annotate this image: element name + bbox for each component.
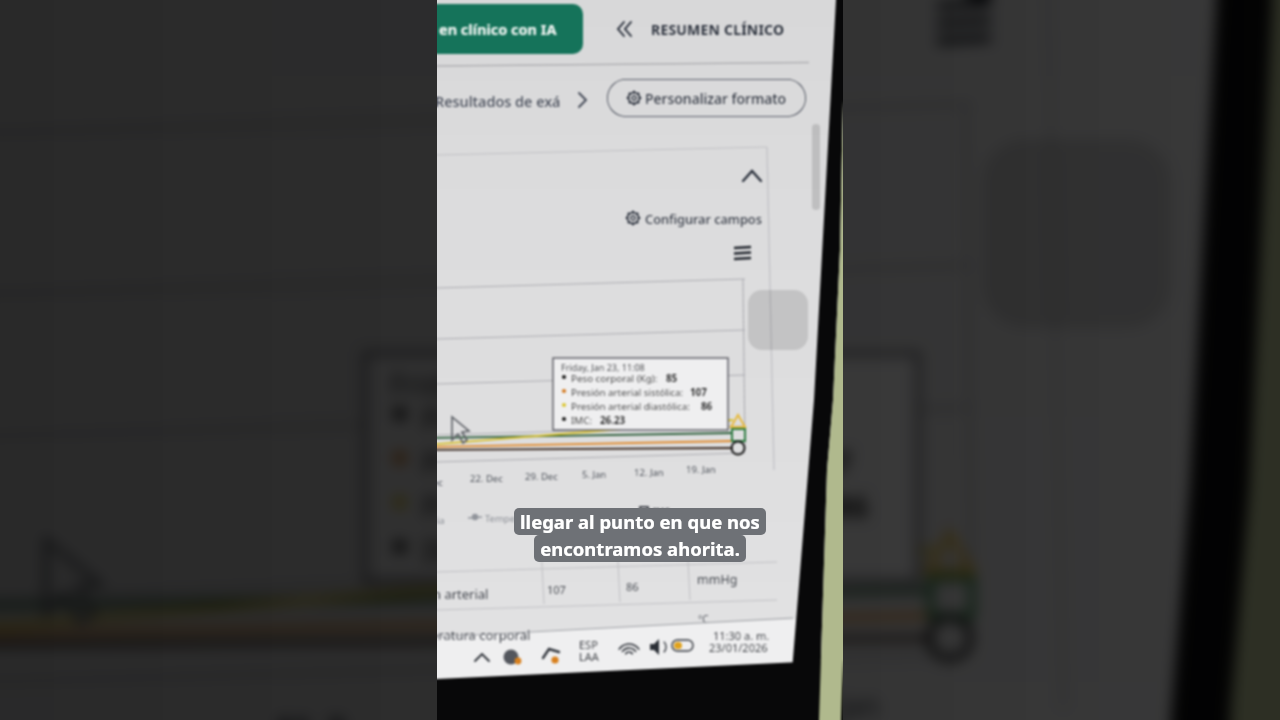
staticText: 19. Jan	[785, 685, 880, 720]
staticText: 26.23	[514, 531, 596, 572]
staticText: IMC	[653, 505, 670, 517]
staticText: Presión arterial sistólica:	[422, 442, 785, 483]
button[interactable]: Bandeja del sistema	[467, 634, 707, 668]
staticText: ec	[437, 476, 443, 489]
staticText: 107	[547, 582, 566, 597]
staticText: IMC:	[422, 531, 498, 572]
staticText: en clínico con IA	[439, 19, 557, 39]
staticText: n arterial	[437, 585, 489, 603]
staticText: Personalizar formato	[645, 89, 787, 108]
staticText: Tempe	[485, 512, 516, 525]
staticText: Peso corporal (Kg):	[422, 398, 703, 439]
staticText: 107	[798, 442, 852, 483]
staticText: mmHg	[697, 571, 738, 588]
staticText: 26.23	[600, 414, 626, 427]
staticText: 11:30 a. m.	[713, 628, 770, 643]
staticText: Friday, Jan 23, 11:08	[561, 361, 645, 373]
staticText: 23/01/2026	[709, 640, 768, 655]
staticText: °C	[698, 612, 709, 626]
staticText: 86	[626, 579, 639, 594]
staticText: eratura corporal	[437, 626, 531, 644]
button[interactable]: Menú	[731, 244, 755, 264]
staticText: IMC:	[571, 414, 595, 427]
staticText: 5. Jan	[582, 468, 607, 481]
staticText: LAA	[579, 649, 599, 664]
staticText: encontramos ahorita.	[540, 536, 740, 561]
staticText: RESUMEN CLÍNICO	[651, 20, 785, 39]
staticText: 107	[690, 386, 707, 399]
staticText: Configurar campos	[645, 210, 762, 227]
staticText: 85	[722, 398, 760, 439]
button[interactable]: Personalizar formato	[607, 79, 806, 117]
button[interactable]: en clínico con IA	[437, 4, 583, 54]
staticText: Friday, Jan 23, 11:08	[390, 363, 656, 401]
button[interactable]: Siguiente	[575, 88, 593, 112]
button[interactable]: Atrás	[615, 17, 639, 41]
button[interactable]: Configurar campos	[623, 207, 763, 229]
staticText: 19. Jan	[686, 463, 716, 476]
staticText: Presión arterial diastólica:	[571, 400, 693, 413]
button[interactable]: 11:30 a. m.	[707, 626, 779, 654]
staticText: ria	[437, 514, 445, 527]
staticText: ESP	[579, 637, 598, 652]
staticText: 22. Dec	[470, 472, 503, 485]
staticText: 85	[666, 372, 678, 385]
staticText: 86	[833, 486, 871, 527]
button[interactable]: Menú	[928, 0, 1003, 57]
staticText: Resultados de exá	[437, 91, 561, 111]
staticText: llegar al punto en que nos	[520, 509, 760, 534]
staticText: Peso corporal (Kg):	[571, 372, 660, 385]
staticText: Presión arterial diastólica:	[422, 486, 807, 527]
staticText: 29. Dec	[525, 470, 558, 483]
staticText: 86	[701, 400, 713, 413]
staticText: 12. Jan	[634, 466, 664, 479]
button[interactable]: Contraer	[741, 166, 763, 188]
staticText: Presión arterial sistólica:	[571, 386, 686, 399]
